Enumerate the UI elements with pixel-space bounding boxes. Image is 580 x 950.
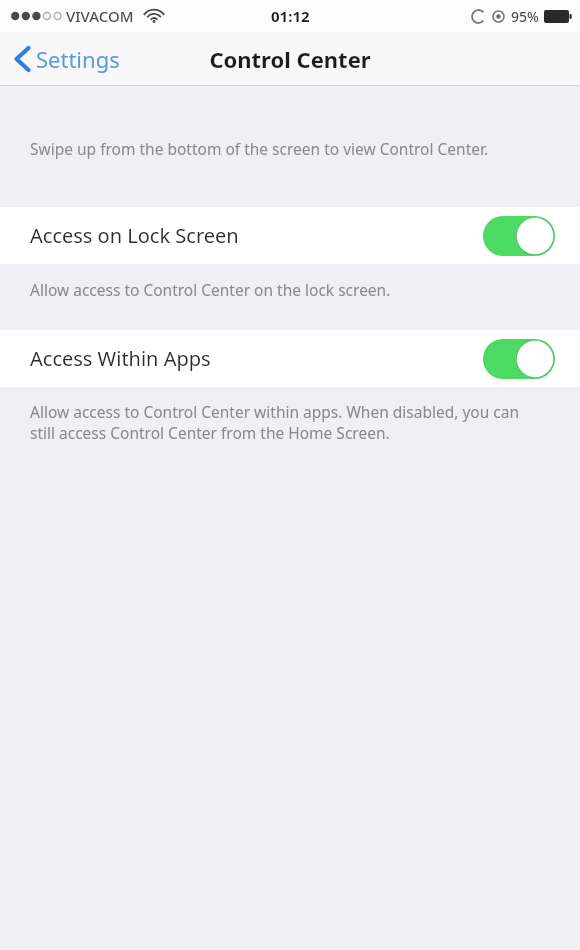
staticText: Access on Lock Screen [30, 222, 239, 249]
button[interactable]: Back [14, 44, 120, 74]
staticText: 01:12 [271, 6, 310, 26]
button[interactable]: Toggle Access on Lock Screen [483, 216, 555, 256]
staticText: Swipe up from the bottom of the screen t… [30, 138, 560, 159]
button[interactable]: Toggle Access Within Apps [483, 339, 555, 379]
staticText: Access Within Apps [30, 345, 211, 372]
staticText: VIVACOM [66, 6, 134, 26]
other: Back [14, 46, 30, 72]
staticText: 95% [511, 7, 539, 26]
staticText: Allow access to Control Center within ap… [30, 401, 544, 444]
staticText: Settings [36, 44, 120, 74]
button[interactable]: Access on Lock Screen [0, 207, 580, 264]
staticText: Control Center [209, 44, 371, 74]
staticText: Allow access to Control Center on the lo… [30, 279, 560, 300]
button[interactable]: Access Within Apps [0, 330, 580, 387]
